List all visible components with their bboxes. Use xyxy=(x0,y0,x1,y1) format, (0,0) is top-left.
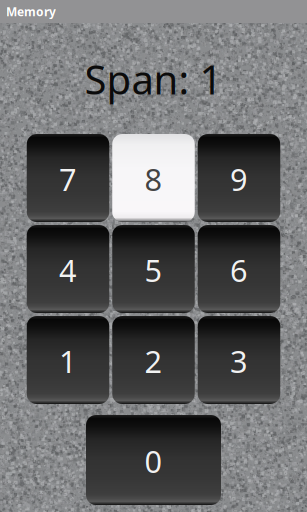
staticText: Memory xyxy=(6,3,56,19)
staticText: 3 xyxy=(230,341,248,381)
staticText: 0 xyxy=(144,441,162,481)
button[interactable]: 3 xyxy=(198,316,280,404)
button[interactable]: 0 xyxy=(86,415,221,505)
button[interactable]: 9 xyxy=(198,134,280,222)
button[interactable]: 5 xyxy=(112,225,195,313)
staticText: 6 xyxy=(230,250,248,290)
button[interactable]: 1 xyxy=(27,316,109,404)
staticText: 4 xyxy=(59,250,77,290)
button[interactable]: 4 xyxy=(27,225,109,313)
staticText: 2 xyxy=(144,341,162,381)
staticText: 1 xyxy=(59,341,77,381)
button[interactable]: 8 xyxy=(112,134,195,222)
staticText: 8 xyxy=(144,159,162,199)
staticText: Span: 1 xyxy=(84,52,222,105)
staticText: 5 xyxy=(144,250,162,290)
staticText: 9 xyxy=(230,159,248,199)
button[interactable]: 6 xyxy=(198,225,280,313)
staticText: 7 xyxy=(59,159,77,199)
button[interactable]: 7 xyxy=(27,134,109,222)
button[interactable]: 2 xyxy=(112,316,195,404)
